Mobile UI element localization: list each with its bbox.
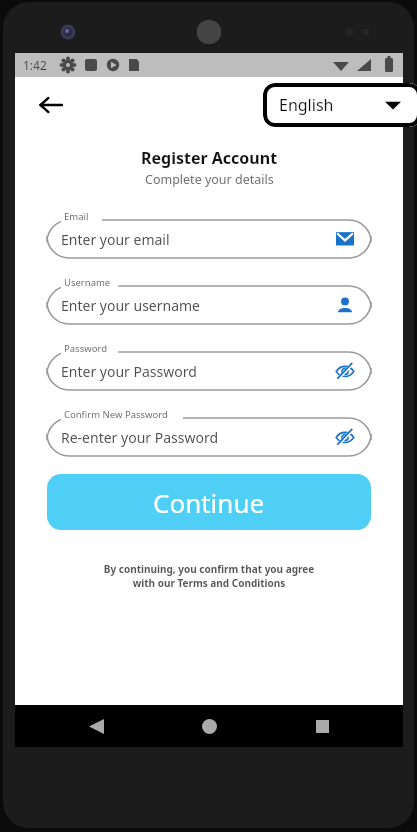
button[interactable]: Password bbox=[47, 344, 371, 390]
button[interactable]: Back bbox=[79, 709, 113, 743]
staticText: Register Account bbox=[141, 147, 278, 169]
button[interactable]: Username bbox=[47, 278, 371, 324]
button[interactable]: Recents bbox=[305, 709, 339, 743]
button[interactable]: Back bbox=[33, 87, 69, 123]
staticText: Re-enter your Password bbox=[61, 428, 219, 447]
button[interactable]: Show password bbox=[333, 425, 357, 449]
button[interactable]: Home bbox=[192, 709, 226, 743]
staticText: 1:42 bbox=[23, 57, 47, 73]
staticText: Enter your username bbox=[61, 296, 201, 315]
button[interactable]: Email bbox=[333, 227, 357, 251]
staticText: Continue bbox=[153, 485, 265, 520]
staticText: Confirm New Password bbox=[64, 408, 168, 421]
staticText: Email bbox=[64, 210, 89, 223]
staticText: Enter your Password bbox=[61, 362, 197, 381]
button[interactable]: By continuing, you confirm that you agre… bbox=[39, 562, 379, 590]
button[interactable]: Continue bbox=[47, 474, 371, 530]
button[interactable]: Show password bbox=[333, 359, 357, 383]
staticText: Enter your email bbox=[61, 230, 170, 249]
button[interactable]: Email bbox=[47, 212, 371, 258]
button[interactable]: Confirm New Password bbox=[47, 410, 371, 456]
staticText: Password bbox=[64, 342, 107, 355]
button[interactable]: Username bbox=[333, 293, 357, 317]
staticText: Complete your details bbox=[145, 171, 274, 188]
staticText: Username bbox=[64, 276, 111, 289]
staticText: English bbox=[279, 94, 334, 116]
button[interactable]: English bbox=[263, 83, 417, 127]
